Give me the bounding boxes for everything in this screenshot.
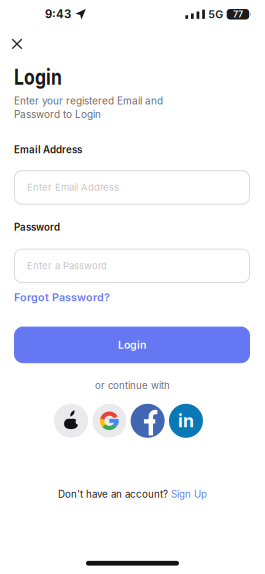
staticText: or continue with [95,380,170,391]
staticText: in [178,410,194,431]
staticText: Sign Up [171,488,207,500]
staticText: Don't have an account? [58,488,168,500]
staticText: 9:43 [45,7,71,21]
staticText: Enter Email Address [27,182,119,193]
staticText: Enter a Password [27,260,107,272]
staticText: Email Address [14,144,82,156]
staticText: 5G [208,8,223,21]
staticText: Forgot Password? [14,291,110,304]
staticText: Login [14,64,71,90]
staticText: Enter your registered Email and Password… [14,95,163,120]
staticText: Password [14,221,60,233]
staticText: 77 [233,9,243,19]
staticText: Login [118,338,146,351]
